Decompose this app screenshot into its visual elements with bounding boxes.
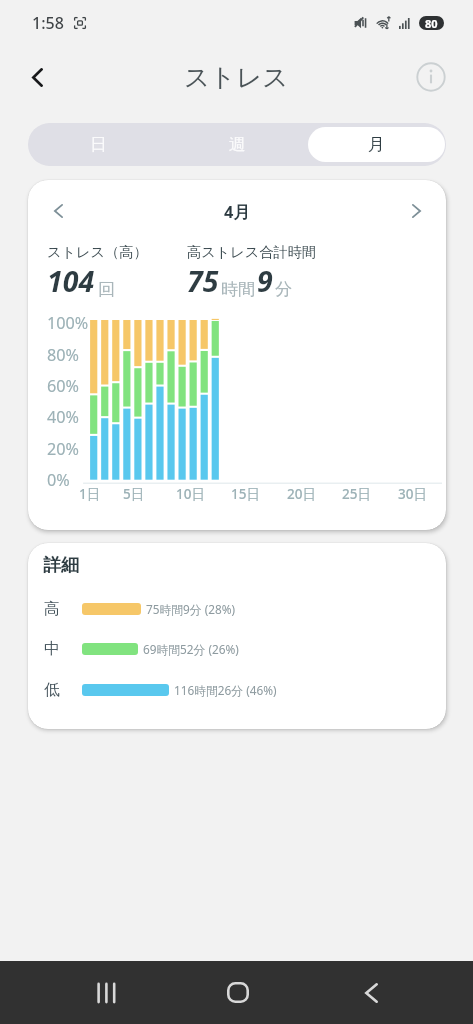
staticText: 月 — [368, 134, 385, 155]
staticText: 100% — [47, 312, 89, 332]
staticText: 低 — [44, 680, 60, 700]
staticText: ストレス（高） — [47, 243, 148, 261]
staticText: 9 — [257, 262, 273, 301]
staticText: 中 — [44, 639, 60, 659]
staticText: 80% — [47, 344, 79, 364]
button[interactable]: Next month — [400, 195, 432, 227]
staticText: 詳細 — [43, 554, 79, 577]
button[interactable]: Home — [216, 961, 260, 1024]
button[interactable]: Information — [416, 62, 446, 92]
staticText: 高 — [44, 599, 60, 619]
staticText: 30日 — [398, 485, 427, 503]
button[interactable]: 日 — [28, 123, 168, 166]
staticText: 75 — [187, 262, 219, 301]
staticText: 0% — [47, 469, 70, 489]
staticText: 10日 — [176, 485, 205, 503]
staticText: 分 — [275, 279, 292, 300]
staticText: 4月 — [224, 200, 250, 222]
button[interactable]: Back — [14, 54, 60, 100]
staticText: 20% — [47, 438, 79, 458]
staticText: 116時間26分 (46%) — [174, 682, 277, 698]
staticText: 15日 — [231, 485, 260, 503]
button[interactable]: 月 — [308, 127, 445, 162]
staticText: 80 — [425, 16, 438, 30]
staticText: 25日 — [342, 485, 371, 503]
button[interactable]: 中 — [28, 636, 446, 662]
staticText: 回 — [98, 279, 115, 300]
staticText: 日 — [90, 134, 107, 155]
staticText: 高ストレス合計時間 — [187, 243, 317, 261]
staticText: 1:58 — [32, 12, 64, 34]
button[interactable]: 高 — [28, 596, 446, 622]
button[interactable]: 低 — [28, 677, 446, 703]
button[interactable]: Previous month — [42, 195, 74, 227]
staticText: 週 — [229, 134, 246, 155]
staticText: 60% — [47, 375, 79, 395]
staticText: 75時間9分 (28%) — [146, 601, 236, 617]
button[interactable]: Recent apps — [84, 961, 128, 1024]
button[interactable]: 週 — [168, 123, 307, 166]
staticText: 5日 — [123, 485, 145, 503]
staticText: 69時間52分 (26%) — [143, 641, 239, 657]
staticText: 104 — [47, 262, 95, 301]
staticText: 20日 — [287, 485, 316, 503]
button[interactable]: Back — [349, 961, 393, 1024]
staticText: 1日 — [79, 485, 101, 503]
staticText: 時間 — [221, 279, 255, 300]
staticText: ストレス — [184, 61, 289, 93]
staticText: 40% — [47, 406, 79, 426]
